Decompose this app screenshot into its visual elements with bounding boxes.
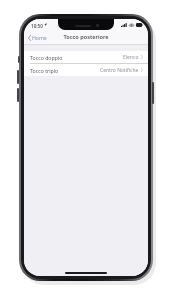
staticText: Centro Notifiche [100,67,139,74]
staticText: Tocco triplo [30,67,59,74]
button[interactable]: Tocco doppio [24,51,148,64]
staticText: Home [32,34,47,41]
staticText: Elenco [123,54,139,61]
staticText: Tocco posteriore [63,33,109,41]
button[interactable]: Tocco triplo [24,64,148,76]
staticText: Tocco doppio [30,54,63,61]
staticText: 10:50 [31,23,43,29]
button[interactable]: Home [24,31,53,44]
